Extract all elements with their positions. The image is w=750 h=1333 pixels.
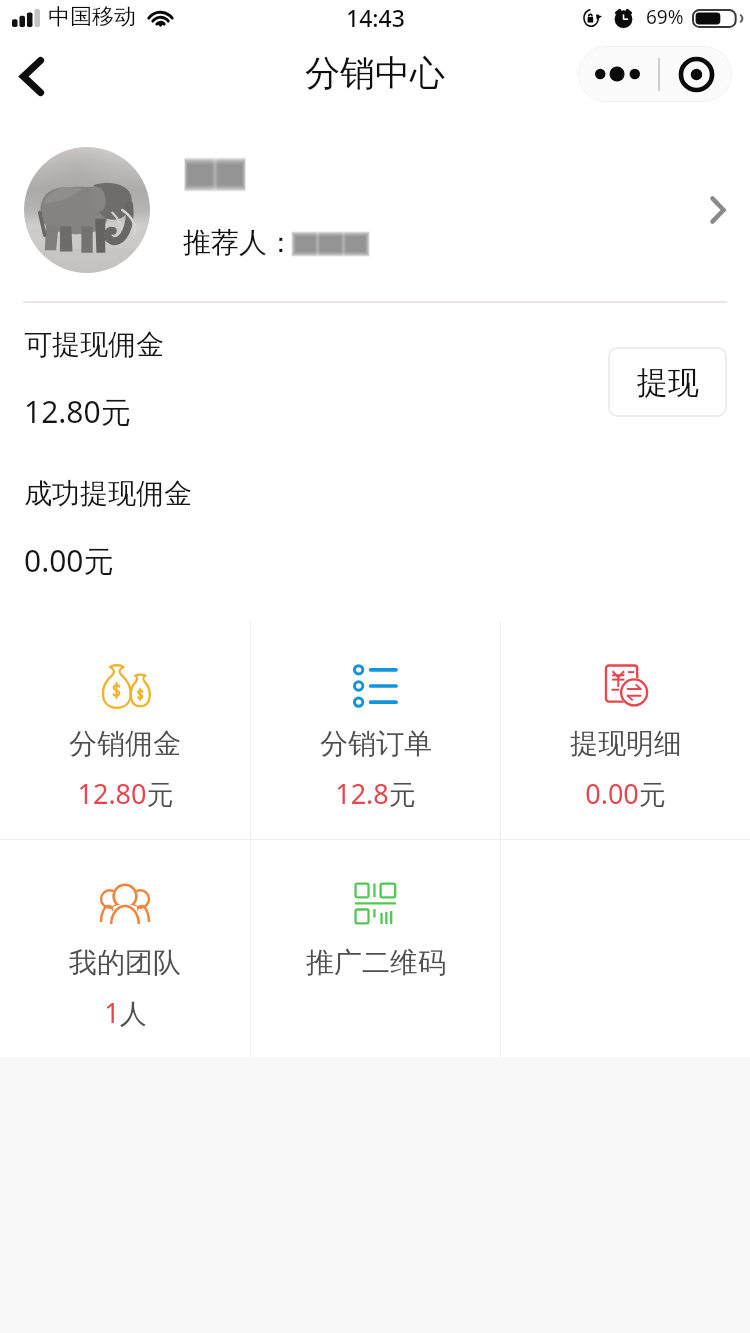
staticText: 可提现佣金 (24, 327, 164, 362)
button[interactable]: 分销订单 (251, 621, 500, 839)
staticText: 提现明细 (570, 726, 682, 761)
button[interactable]: 分销佣金 (0, 621, 250, 839)
staticText: 成功提现佣金 (24, 476, 192, 511)
button[interactable]: 个人资料 (0, 124, 750, 296)
staticText: 69% (646, 4, 684, 30)
staticText: 14:43 (346, 2, 405, 33)
staticText: 12.80元 (24, 391, 131, 432)
staticText: 分销佣金 (69, 726, 181, 761)
staticText: 0.00元 (24, 540, 114, 581)
staticText: 推荐人： (183, 225, 295, 260)
staticText: 提现 (637, 363, 699, 402)
staticText: 1人 (104, 994, 147, 1031)
staticText: 推广二维码 (306, 945, 446, 980)
button[interactable]: 提现明细 (501, 621, 750, 839)
staticText: 12.8元 (335, 775, 416, 812)
staticText: 我的团队 (69, 945, 181, 980)
button[interactable]: 提现 (608, 347, 727, 417)
staticText: 0.00元 (585, 775, 666, 812)
button[interactable]: Back (3, 40, 61, 112)
staticText: 中国移动 (48, 3, 136, 31)
button[interactable]: More options (578, 46, 732, 102)
button[interactable]: 推广二维码 (251, 840, 500, 1057)
staticText: 分销中心 (305, 51, 445, 95)
staticText: 分销订单 (320, 726, 432, 761)
button[interactable]: 我的团队 (0, 840, 250, 1057)
staticText: 12.80元 (77, 775, 174, 812)
